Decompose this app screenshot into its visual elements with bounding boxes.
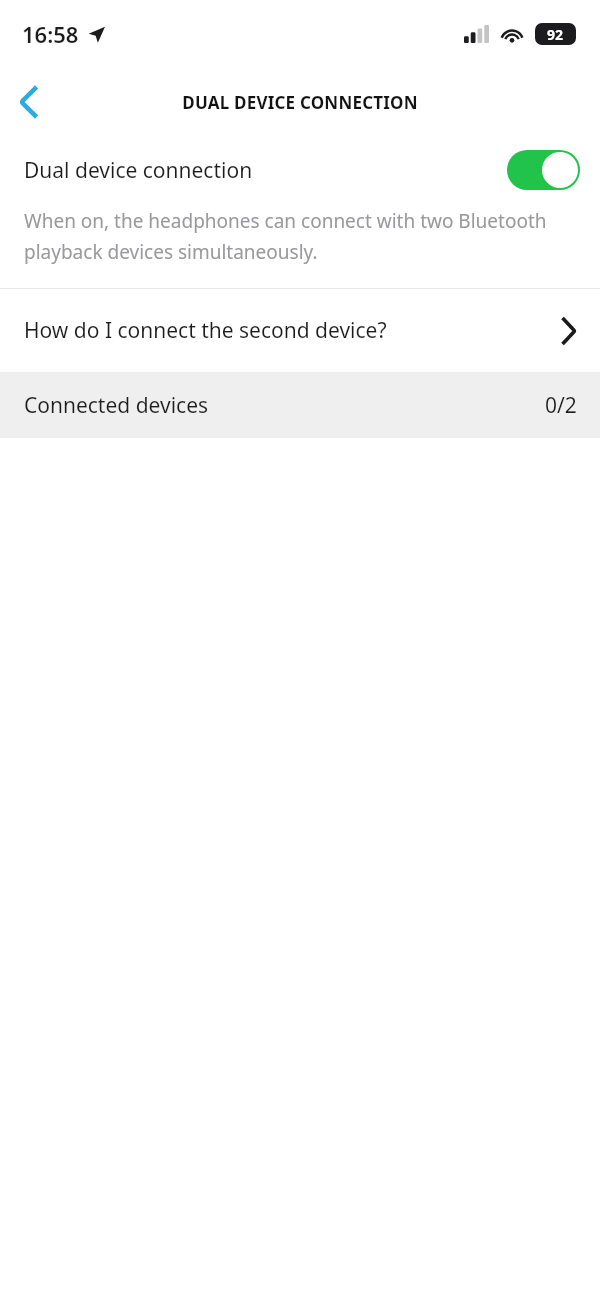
- staticText: How do I connect the second device?: [24, 316, 387, 345]
- staticText: 92: [547, 25, 564, 44]
- button[interactable]: How do I connect the second device?: [0, 289, 600, 372]
- staticText: Connected devices: [24, 391, 209, 420]
- button[interactable]: Connected devices: [0, 372, 600, 438]
- staticText: 16:58: [22, 19, 79, 49]
- staticText: 0/2: [545, 391, 577, 420]
- other: Dual device connection toggle: [507, 150, 580, 190]
- staticText: DUAL DEVICE CONNECTION: [0, 91, 600, 114]
- button[interactable]: Back: [0, 73, 58, 131]
- button[interactable]: Dual device connection: [0, 136, 600, 204]
- staticText: When on, the headphones can connect with…: [24, 208, 560, 264]
- staticText: Dual device connection: [24, 156, 253, 185]
